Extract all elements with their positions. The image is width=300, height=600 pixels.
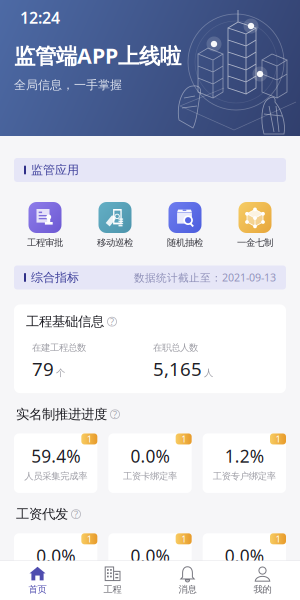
staticText: 监管端APP上线啦	[14, 41, 181, 69]
staticText: 79	[32, 356, 54, 381]
staticText: 1	[87, 433, 92, 445]
button[interactable]: 0.0%	[14, 533, 97, 593]
staticText: 数据统计截止至：2021-09-13	[134, 270, 276, 285]
staticText: 实名制推进进度	[16, 406, 107, 422]
staticText: 工程审批	[27, 237, 63, 248]
button[interactable]: 移动巡检	[80, 202, 150, 248]
button[interactable]: 工程	[75, 561, 150, 600]
button[interactable]: 首页	[0, 561, 75, 600]
staticText: 移动巡检	[97, 237, 133, 248]
staticText: 5,165	[153, 356, 202, 381]
button[interactable]: 随机抽检	[150, 202, 220, 248]
staticText: 1	[275, 533, 280, 545]
staticText: 1	[181, 533, 186, 545]
button[interactable]: 消息	[150, 561, 225, 600]
staticText: 专户使用率	[222, 570, 267, 582]
button[interactable]: 工程审批	[10, 202, 80, 248]
staticText: 工资卡绑定率	[123, 470, 177, 482]
button[interactable]: 0.0%	[108, 533, 192, 593]
staticText: ?	[113, 408, 117, 420]
staticText: 首页	[28, 584, 46, 595]
staticText: 个	[56, 367, 65, 379]
button[interactable]: 0.0%	[203, 533, 286, 593]
staticText: 随机抽检	[167, 237, 203, 248]
staticText: 工资代发	[16, 506, 68, 522]
staticText: 1.2%	[225, 444, 264, 467]
staticText: 在建工程总数	[32, 342, 86, 353]
staticText: 12:24	[20, 7, 60, 28]
staticText: 全局信息，一手掌握	[14, 78, 122, 92]
staticText: 综合指标	[31, 270, 79, 285]
staticText: 在职总人数	[153, 342, 198, 353]
staticText: 工程	[103, 584, 121, 595]
staticText: ?	[74, 508, 78, 520]
staticText: 59.4%	[31, 444, 80, 467]
staticText: 消息	[178, 584, 196, 595]
staticText: 0.0%	[130, 544, 169, 567]
staticText: 1	[275, 433, 280, 445]
staticText: 0.0%	[225, 544, 264, 567]
staticText: 0.0%	[36, 544, 75, 567]
staticText: 1	[87, 533, 92, 545]
staticText: 我的	[253, 584, 271, 595]
button[interactable]: 一金七制	[220, 202, 290, 248]
staticText: 工资专户绑定率	[213, 470, 276, 482]
staticText: 按时发放率	[33, 570, 78, 582]
staticText: 人	[204, 367, 213, 379]
staticText: 监管应用	[31, 163, 79, 177]
button[interactable]: 0.0%	[108, 433, 192, 493]
staticText: ?	[110, 315, 114, 328]
staticText: 一金七制	[237, 237, 273, 248]
staticText: 人员采集完成率	[24, 470, 87, 482]
staticText: 0.0%	[130, 444, 169, 467]
button[interactable]: 我的	[225, 561, 300, 600]
staticText: 1	[181, 433, 186, 445]
staticText: 工程基础信息	[26, 313, 104, 330]
button[interactable]: 59.4%	[14, 433, 97, 493]
button[interactable]: 1.2%	[203, 433, 286, 493]
